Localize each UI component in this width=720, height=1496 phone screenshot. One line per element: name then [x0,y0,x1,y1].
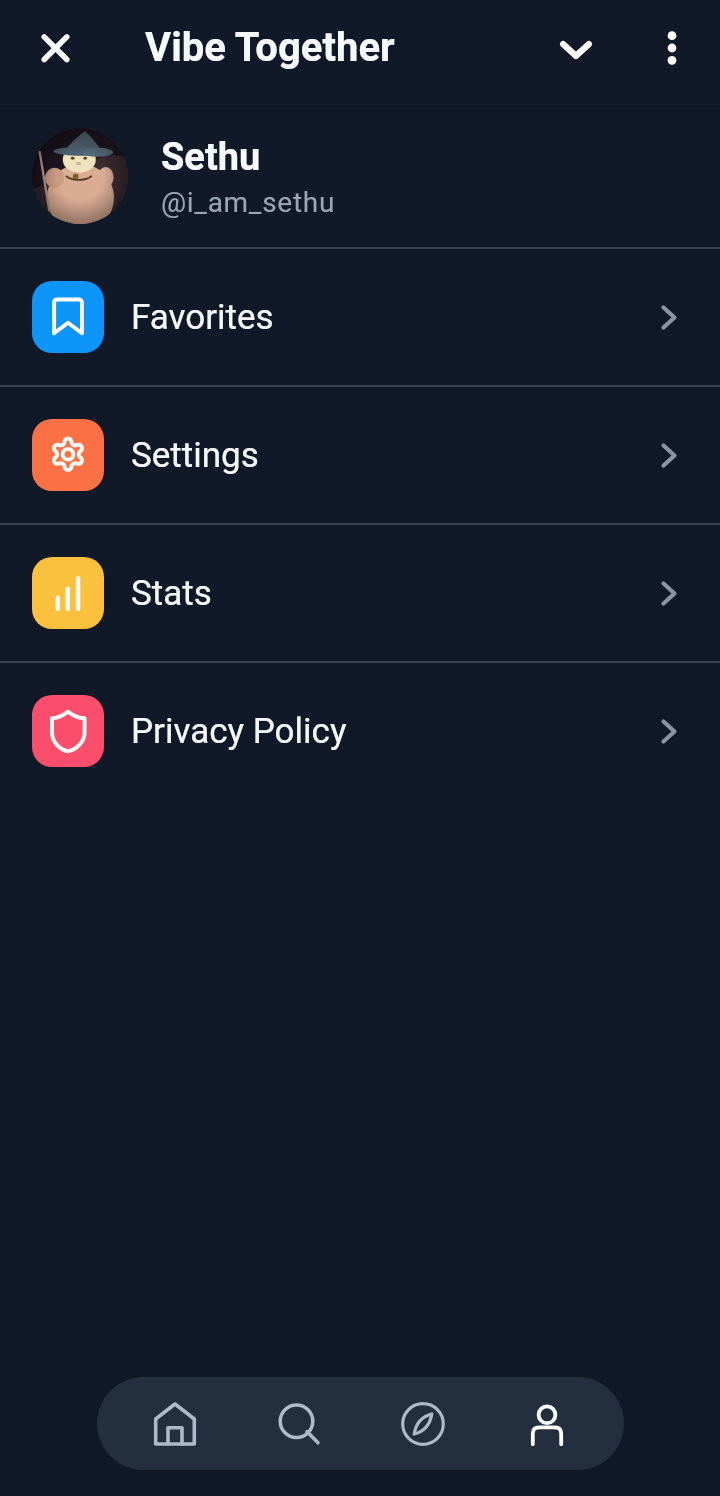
button[interactable]: Stats [0,525,720,661]
staticText: Settings [131,435,259,476]
button[interactable]: Settings [0,387,720,523]
button[interactable]: Explore [361,1377,485,1470]
staticText: Stats [131,573,212,614]
button[interactable]: Expand [537,11,615,89]
button[interactable]: Profile [485,1377,609,1470]
button[interactable]: Close [16,9,95,88]
staticText: Favorites [131,297,274,338]
staticText: Privacy Policy [131,711,347,752]
button[interactable]: Sethu [0,105,720,247]
button[interactable]: Privacy Policy [0,663,720,799]
button[interactable]: More options [633,9,711,87]
staticText: @i_am_sethu [161,186,336,219]
button[interactable]: Favorites [0,249,720,385]
button[interactable]: Search [237,1377,361,1470]
staticText: Vibe Together [145,24,395,71]
staticText: Sethu [161,135,261,180]
button[interactable]: Home [112,1377,237,1470]
